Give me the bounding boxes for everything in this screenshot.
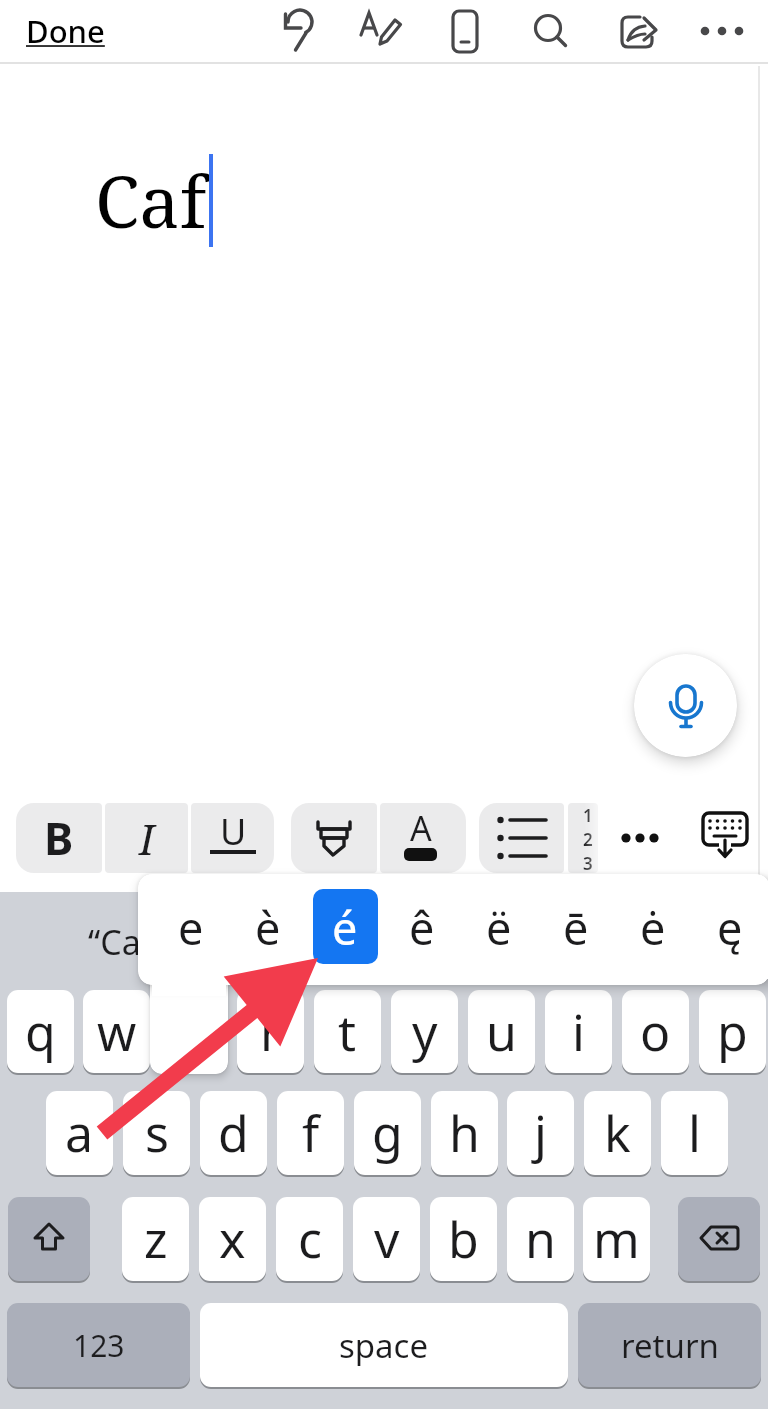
button[interactable]: ë [466, 893, 532, 961]
staticText: u [486, 998, 517, 1066]
button[interactable] [273, 7, 321, 55]
button[interactable]: j [507, 1091, 574, 1175]
staticText: f [302, 1099, 320, 1167]
button[interactable] [291, 803, 377, 873]
button[interactable]: return [578, 1303, 761, 1387]
staticText: A [410, 805, 432, 851]
button[interactable] [696, 804, 756, 870]
staticText: h [449, 1099, 480, 1167]
staticText: b [448, 1205, 479, 1273]
staticText: w [97, 998, 137, 1066]
button[interactable]: p [699, 990, 766, 1073]
staticText: m [593, 1205, 640, 1273]
button[interactable]: I [105, 803, 188, 873]
button[interactable]: v [353, 1197, 420, 1281]
staticText: z [144, 1205, 168, 1273]
button[interactable]: w [83, 990, 150, 1073]
staticText: y [412, 998, 438, 1066]
button[interactable] [634, 654, 737, 757]
button[interactable]: a [46, 1091, 113, 1175]
staticText: a [65, 1099, 94, 1167]
button[interactable]: n [507, 1197, 574, 1281]
button[interactable]: ē [543, 893, 609, 961]
staticText: U [220, 807, 247, 856]
button[interactable]: g [354, 1091, 421, 1175]
staticText: 2 [583, 828, 593, 851]
button[interactable]: m [583, 1197, 650, 1281]
button[interactable] [357, 7, 405, 55]
button[interactable]: t [314, 990, 381, 1073]
staticText: return [621, 1323, 719, 1368]
staticText: l [688, 1099, 701, 1167]
button[interactable]: q [7, 990, 74, 1073]
staticText: d [218, 1099, 249, 1167]
button[interactable]: z [122, 1197, 189, 1281]
staticText: ę [717, 897, 743, 958]
staticText: g [372, 1099, 403, 1167]
button[interactable] [8, 1197, 90, 1281]
staticText: space [339, 1323, 429, 1368]
staticText: x [219, 1205, 246, 1273]
staticText: t [338, 998, 357, 1066]
button[interactable]: e [158, 893, 224, 961]
button[interactable]: r [237, 990, 304, 1073]
staticText: s [145, 1099, 169, 1167]
staticText: é [332, 897, 358, 958]
staticText: p [717, 998, 748, 1066]
button[interactable]: h [431, 1091, 498, 1175]
staticText: k [604, 1099, 631, 1167]
staticText: v [374, 1205, 400, 1273]
staticText: ê [409, 897, 435, 958]
staticText: j [534, 1099, 547, 1167]
button[interactable]: l [661, 1091, 728, 1175]
button[interactable]: ę [697, 893, 763, 961]
button[interactable]: o [622, 990, 689, 1073]
staticText: 123 [73, 1325, 125, 1366]
staticText: 3 [583, 852, 593, 875]
button[interactable]: d [200, 1091, 267, 1175]
staticText: Caf [95, 151, 207, 249]
button[interactable]: y [391, 990, 458, 1073]
button[interactable]: B [16, 803, 102, 873]
button[interactable]: è [235, 893, 301, 961]
staticText: ė [640, 897, 666, 958]
button[interactable]: ê [389, 893, 455, 961]
staticText: B [44, 808, 74, 868]
button[interactable]: i [545, 990, 612, 1073]
staticText: Done [26, 10, 105, 52]
staticText: i [572, 998, 585, 1066]
button[interactable]: s [123, 1091, 190, 1175]
button[interactable]: b [430, 1197, 497, 1281]
button[interactable]: x [199, 1197, 266, 1281]
button[interactable]: é [312, 893, 378, 961]
button[interactable] [479, 803, 564, 873]
button[interactable]: A [380, 803, 466, 873]
button[interactable] [527, 7, 575, 55]
button[interactable]: k [584, 1091, 651, 1175]
staticText: è [255, 897, 281, 958]
button[interactable] [441, 7, 489, 55]
staticText: 1 [583, 804, 593, 827]
button[interactable]: u [468, 990, 535, 1073]
staticText: I [139, 810, 155, 867]
staticText: e [178, 897, 204, 958]
button[interactable] [612, 810, 668, 866]
staticText: q [25, 998, 56, 1066]
button[interactable]: c [276, 1197, 343, 1281]
button[interactable] [313, 889, 378, 964]
button[interactable] [698, 7, 746, 55]
staticText: “Caf [88, 919, 153, 965]
button[interactable]: 123 [7, 1303, 190, 1387]
staticText: c [298, 1205, 322, 1273]
staticText: r [260, 998, 281, 1066]
staticText: n [525, 1205, 556, 1273]
button[interactable]: U [191, 803, 274, 873]
button[interactable]: f [277, 1091, 344, 1175]
button[interactable]: ė [620, 893, 686, 961]
staticText: o [640, 998, 671, 1066]
button[interactable] [678, 1197, 760, 1281]
staticText: ē [563, 897, 589, 958]
button[interactable]: Done [20, 8, 110, 54]
button[interactable]: space [200, 1303, 568, 1387]
button[interactable] [612, 7, 660, 55]
